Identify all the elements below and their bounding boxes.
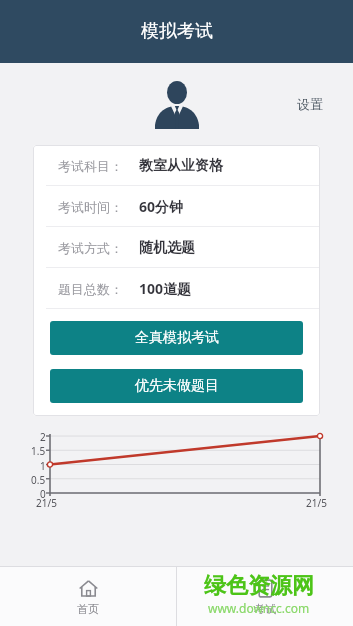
staticText: 0.5	[31, 473, 46, 487]
staticText: 模拟考试	[141, 20, 213, 43]
staticText: 1.5	[31, 444, 46, 458]
button[interactable]: 设置	[291, 92, 329, 116]
staticText: 随机选题	[139, 239, 195, 257]
staticText: 2	[40, 430, 46, 444]
staticText: 考试科目：	[58, 158, 123, 174]
staticText: www.downcc.com	[208, 600, 310, 616]
staticText: 21/5	[306, 496, 327, 510]
button[interactable]: 全真模拟考试	[50, 321, 303, 355]
button[interactable]: User avatar	[149, 76, 205, 132]
staticText: 0	[40, 487, 46, 501]
staticText: 21/5	[36, 496, 57, 510]
staticText: 全真模拟考试	[135, 329, 219, 347]
staticText: 考试时间：	[58, 199, 123, 215]
staticText: 优先未做题目	[135, 377, 219, 395]
staticText: 1	[40, 459, 46, 473]
button[interactable]: 考试方式：	[33, 227, 320, 268]
staticText: 60分钟	[139, 197, 184, 216]
staticText: 绿色资源网	[204, 572, 314, 600]
staticText: 100道题	[139, 279, 192, 298]
button[interactable]: 优先未做题目	[50, 369, 303, 403]
staticText: 考试方式：	[58, 240, 123, 256]
button[interactable]: 首页	[0, 567, 176, 626]
staticText: 设置	[297, 96, 323, 112]
button[interactable]: 考试时间：	[33, 186, 320, 227]
button[interactable]: 题目总数：	[33, 268, 320, 309]
button[interactable]: 考试	[177, 567, 353, 626]
button[interactable]: 考试科目：	[33, 145, 320, 186]
staticText: 题目总数：	[58, 281, 123, 297]
staticText: 考试	[254, 602, 276, 616]
staticText: 首页	[77, 602, 99, 616]
staticText: 教室从业资格	[139, 157, 223, 175]
